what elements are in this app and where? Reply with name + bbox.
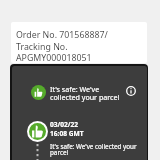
staticText: APGMY000018051 [16,52,92,63]
staticText: 03/02/22 [50,120,79,129]
staticText: 16:08 GMT [50,129,84,138]
button[interactable]: More information [124,84,138,98]
staticText: Tracking No. [16,41,68,53]
staticText: It's safe: We've collected your [50,142,137,151]
button[interactable]: Order No. 701568887/ [11,22,147,63]
button[interactable] [31,85,46,100]
staticText: Order No. 701568887/ [16,29,108,41]
staticText: collected your parcel [50,92,120,102]
staticText: It's safe: We've [50,84,100,94]
staticText: parcel [50,148,69,157]
